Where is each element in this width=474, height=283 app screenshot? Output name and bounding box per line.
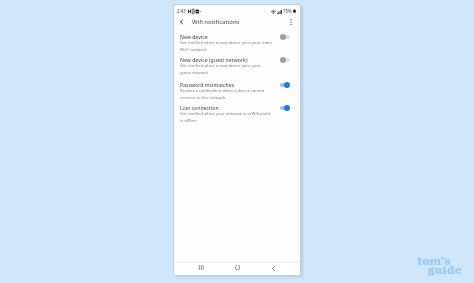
staticText: guide bbox=[428, 262, 462, 278]
button[interactable]: New device (guest network) bbox=[174, 53, 300, 77]
button[interactable]: Toggle off bbox=[280, 34, 290, 40]
staticText: Get notified when a new device joins you… bbox=[180, 63, 261, 69]
staticText: Wi-Fi network bbox=[180, 47, 207, 53]
button[interactable]: New device bbox=[174, 30, 300, 54]
staticText: Password mismatches bbox=[180, 82, 235, 89]
staticText: 2:43 bbox=[177, 8, 186, 14]
staticText: New device (guest network) bbox=[180, 57, 248, 64]
staticText: Get notified when your network or a Wifi… bbox=[180, 111, 271, 117]
button[interactable]: Password mismatches bbox=[174, 78, 300, 102]
button[interactable]: Back bbox=[267, 262, 279, 274]
staticText: connect to the network bbox=[180, 95, 226, 101]
staticText: is offline bbox=[180, 118, 197, 124]
button[interactable]: More options bbox=[285, 16, 297, 28]
staticText: Get notified when a new device joins you… bbox=[180, 40, 272, 46]
staticText: 75% bbox=[283, 8, 292, 14]
button[interactable]: Toggle on bbox=[280, 105, 290, 111]
staticText: Lost connection bbox=[180, 105, 219, 112]
button[interactable]: Back bbox=[175, 15, 188, 28]
button[interactable]: Recent apps bbox=[195, 261, 207, 273]
staticText: Receive a notification when a device can… bbox=[180, 88, 265, 94]
button[interactable]: Toggle on bbox=[280, 82, 290, 88]
staticText: tom's bbox=[417, 253, 451, 269]
staticText: guest network bbox=[180, 70, 209, 76]
button[interactable]: Home bbox=[231, 261, 243, 273]
button[interactable]: Lost connection bbox=[174, 101, 300, 125]
staticText: New device bbox=[180, 34, 208, 41]
button[interactable]: Toggle off bbox=[280, 57, 290, 63]
staticText: Wifi notifications bbox=[192, 18, 240, 26]
